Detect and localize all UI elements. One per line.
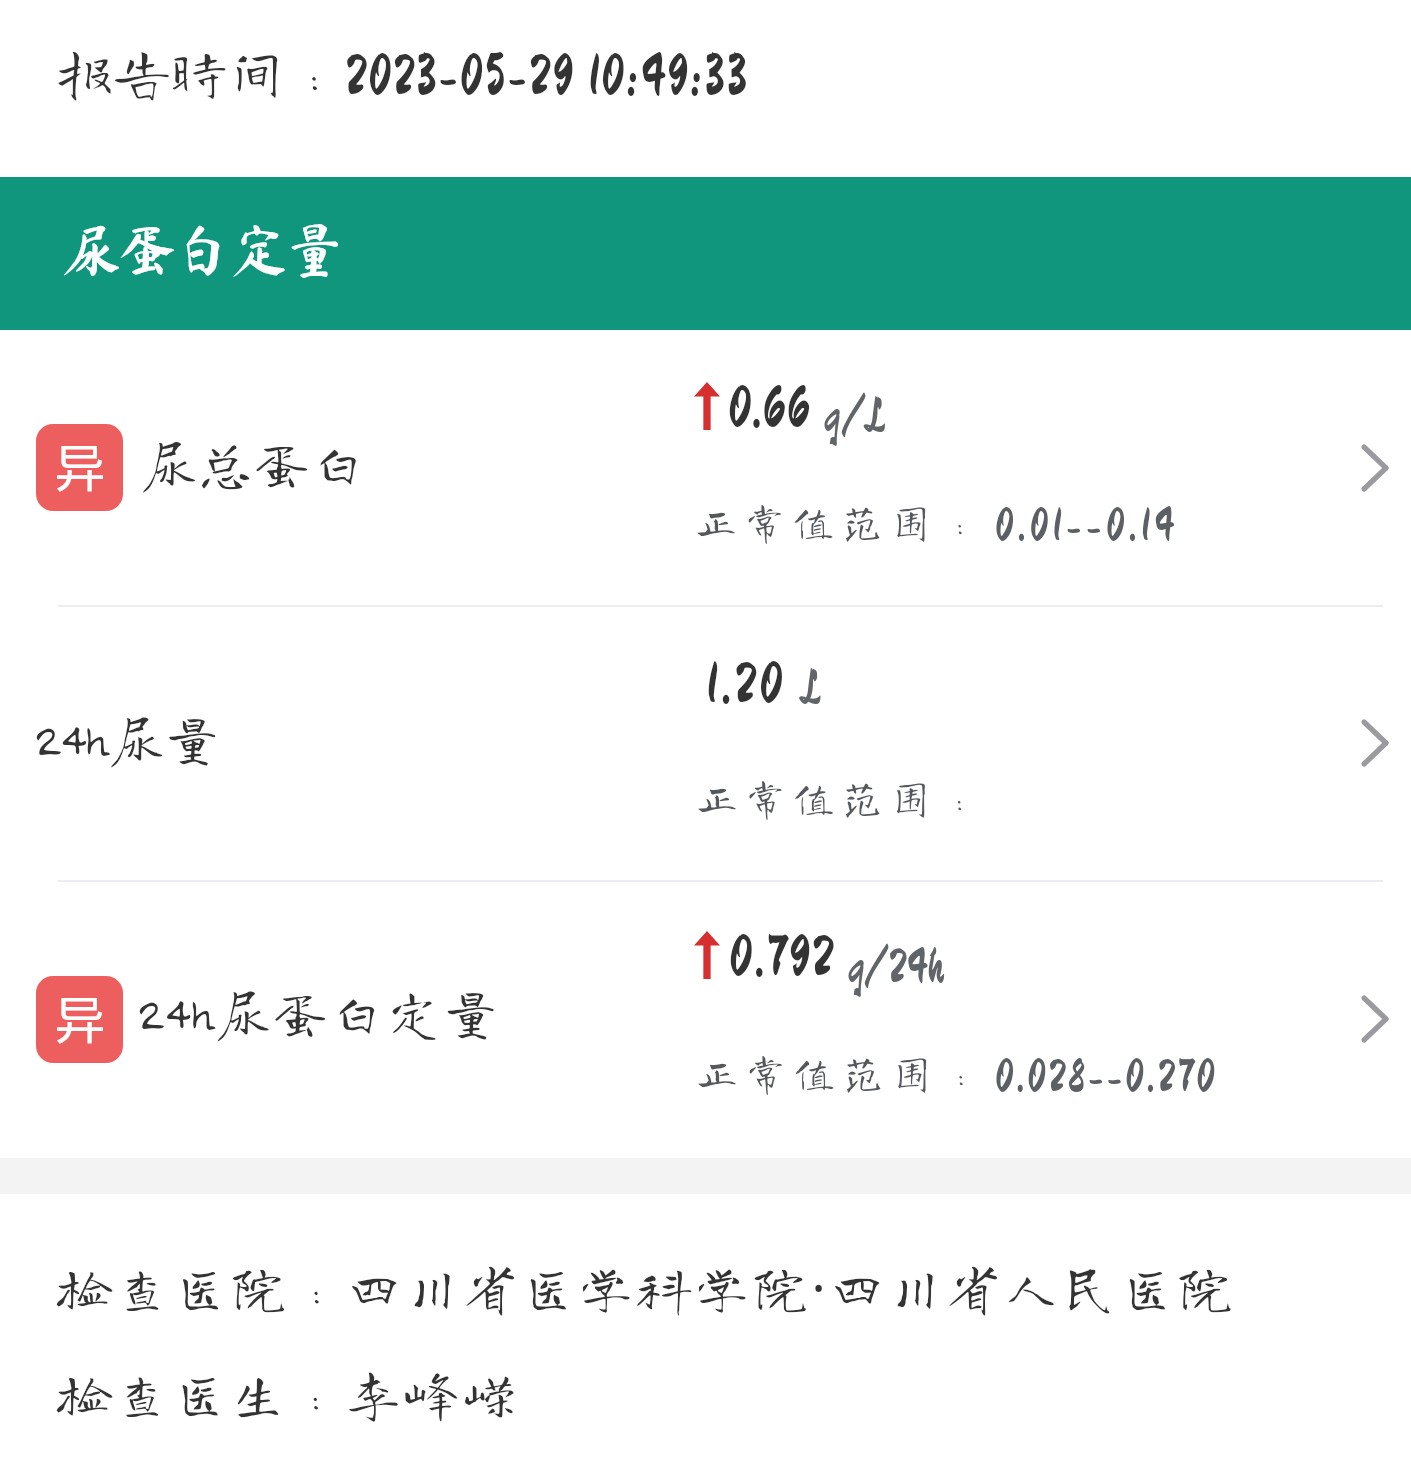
staticText: 0.792 xyxy=(729,928,836,986)
staticText: g/L xyxy=(824,392,887,440)
button[interactable]: 查看详情 xyxy=(1355,991,1395,1047)
staticText: g/24h xyxy=(848,943,945,991)
staticText: 24h尿量 xyxy=(34,711,221,766)
staticText: 异 xyxy=(54,428,106,502)
staticText: 检查医院：四川省医学科学院·四川省人民医院 xyxy=(58,1250,1237,1322)
staticText: 1.20 xyxy=(706,655,786,713)
staticText: 正常值范围： xyxy=(696,776,988,818)
button[interactable]: 24h尿量 xyxy=(0,605,1411,880)
staticText: 检查医生：李峰嵘 xyxy=(58,1366,521,1419)
staticText: 0.028--0.270 xyxy=(995,1054,1218,1100)
staticText: 报告时间： xyxy=(55,42,343,101)
staticText: 正常值范围： xyxy=(696,1051,989,1093)
staticText: 异 xyxy=(54,980,106,1054)
staticText: 尿蛋白定量 xyxy=(63,221,342,278)
button[interactable]: 异 xyxy=(0,330,1411,605)
staticText: L xyxy=(802,664,822,712)
button[interactable]: 查看详情 xyxy=(1355,440,1395,496)
staticText: 2023-05-29 10:49:33 xyxy=(345,48,749,105)
staticText: 尿总蛋白 xyxy=(141,435,367,491)
staticText: 24h尿蛋白定量 xyxy=(137,985,501,1040)
staticText: 正常值范围： xyxy=(695,500,988,542)
button[interactable]: 异 xyxy=(0,880,1411,1158)
staticText: 0.66 xyxy=(728,379,811,437)
button[interactable]: 查看详情 xyxy=(1355,715,1395,771)
staticText: 0.01--0.14 xyxy=(995,503,1179,549)
